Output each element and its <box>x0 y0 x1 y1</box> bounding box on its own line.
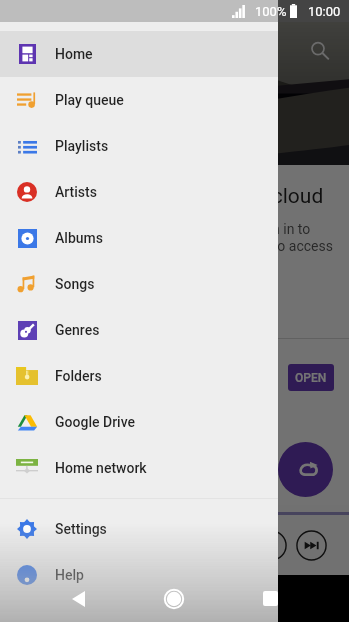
staticText: Albums <box>55 230 103 246</box>
staticText: Google Drive <box>55 414 136 430</box>
button[interactable]: Home <box>0 31 278 77</box>
button[interactable]: Playlists <box>0 123 278 169</box>
staticText: your Google account to access <box>141 238 333 254</box>
button[interactable]: Songs <box>0 261 278 307</box>
button[interactable]: Folders <box>0 353 278 399</box>
button[interactable]: Play <box>256 530 287 561</box>
staticText: Songs <box>55 276 95 292</box>
staticText: 100% <box>255 4 287 19</box>
staticText: Genres <box>55 322 100 338</box>
staticText: Music in the cloud <box>153 184 324 209</box>
button[interactable]: Next <box>296 530 327 561</box>
staticText: Folders <box>55 368 102 384</box>
button[interactable]: Artists <box>0 169 278 215</box>
button[interactable]: Home network <box>0 445 278 491</box>
button[interactable]: Settings <box>0 506 278 552</box>
button[interactable]: Albums <box>0 215 278 261</box>
button[interactable]: Repeat <box>278 442 333 497</box>
staticText: Settings <box>55 521 107 537</box>
staticText: OPEN <box>295 371 327 385</box>
button[interactable]: Recent apps <box>250 575 290 622</box>
button[interactable]: Back <box>58 575 98 622</box>
button[interactable]: OPEN <box>288 364 334 391</box>
staticText: Home network <box>55 460 147 476</box>
staticText: Play queue <box>55 92 124 108</box>
staticText: Help <box>55 567 84 583</box>
button[interactable]: Play queue <box>0 77 278 123</box>
staticText: Playlists <box>55 138 109 154</box>
button[interactable]: Genres <box>0 307 278 353</box>
staticText: 10:00 <box>308 4 341 19</box>
staticText: Artists <box>55 184 97 200</box>
button[interactable]: Search <box>303 34 337 68</box>
button[interactable]: Home <box>154 575 194 622</box>
staticText: Install Google Drive and sign in to <box>103 221 311 237</box>
button[interactable]: Google Drive <box>0 399 278 445</box>
staticText: Home <box>55 46 93 62</box>
button[interactable]: Help <box>0 552 278 598</box>
